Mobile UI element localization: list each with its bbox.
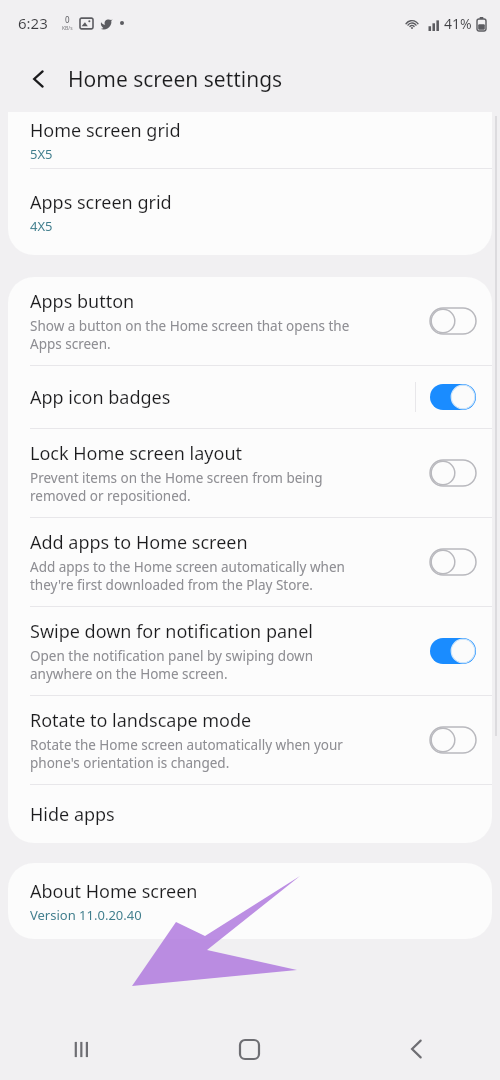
button[interactable]: Home — [166, 1018, 333, 1080]
button[interactable]: Lock Home screen layout — [8, 429, 492, 517]
staticText: Apps screen. — [30, 335, 111, 353]
staticText: Lock Home screen layout — [30, 441, 243, 466]
button[interactable]: Apps button — [8, 277, 492, 365]
staticText: Prevent items on the Home screen from be… — [30, 469, 323, 487]
button[interactable]: Rotate to landscape mode — [430, 727, 476, 753]
staticText: Swipe down for notification panel — [30, 619, 313, 644]
staticText: removed or repositioned. — [30, 487, 191, 505]
staticText: Add apps to Home screen — [30, 530, 248, 555]
staticText: Rotate to landscape mode — [30, 708, 252, 733]
staticText: Open the notification panel by swiping d… — [30, 647, 313, 665]
staticText: App icon badges — [30, 385, 171, 410]
button[interactable]: Swipe down for notification panel — [8, 607, 492, 695]
button[interactable]: Add apps to Home screen — [8, 518, 492, 606]
staticText: KB/s — [62, 25, 73, 32]
button[interactable]: Hide apps — [8, 785, 492, 843]
staticText: anywhere on the Home screen. — [30, 665, 228, 683]
staticText: 5X5 — [30, 145, 53, 163]
staticText: Home screen grid — [30, 118, 181, 143]
button[interactable]: Rotate to landscape mode — [8, 696, 492, 784]
button[interactable]: Lock Home screen layout — [430, 460, 476, 486]
button[interactable]: Back — [333, 1018, 500, 1080]
staticText: About Home screen — [30, 879, 198, 904]
button[interactable]: Add apps to Home screen — [430, 549, 476, 575]
staticText: 41% — [444, 14, 472, 33]
button[interactable]: Home screen grid — [8, 112, 492, 168]
staticText: Rotate the Home screen automatically whe… — [30, 736, 343, 754]
button[interactable]: Back — [22, 62, 56, 96]
staticText: 4X5 — [30, 217, 53, 235]
button[interactable]: App icon badges — [430, 384, 476, 410]
button[interactable]: Apps screen grid — [8, 169, 492, 255]
button[interactable]: About Home screen — [8, 863, 492, 939]
staticText: Apps screen grid — [30, 190, 172, 215]
staticText: Home screen settings — [68, 65, 283, 94]
staticText: they're first downloaded from the Play S… — [30, 576, 313, 594]
button[interactable]: Swipe down for notification panel — [430, 638, 476, 664]
button[interactable]: Recents — [0, 1018, 166, 1080]
button[interactable]: Apps button — [430, 308, 476, 334]
staticText: 6:23 — [18, 13, 48, 33]
staticText: Version 11.0.20.40 — [30, 906, 142, 924]
staticText: phone's orientation is changed. — [30, 754, 230, 772]
staticText: 0 — [65, 14, 70, 25]
button[interactable]: App icon badges — [8, 366, 492, 428]
staticText: Apps button — [30, 289, 135, 314]
staticText: Show a button on the Home screen that op… — [30, 317, 350, 335]
staticText: Add apps to the Home screen automaticall… — [30, 558, 345, 576]
staticText: Hide apps — [30, 802, 115, 827]
